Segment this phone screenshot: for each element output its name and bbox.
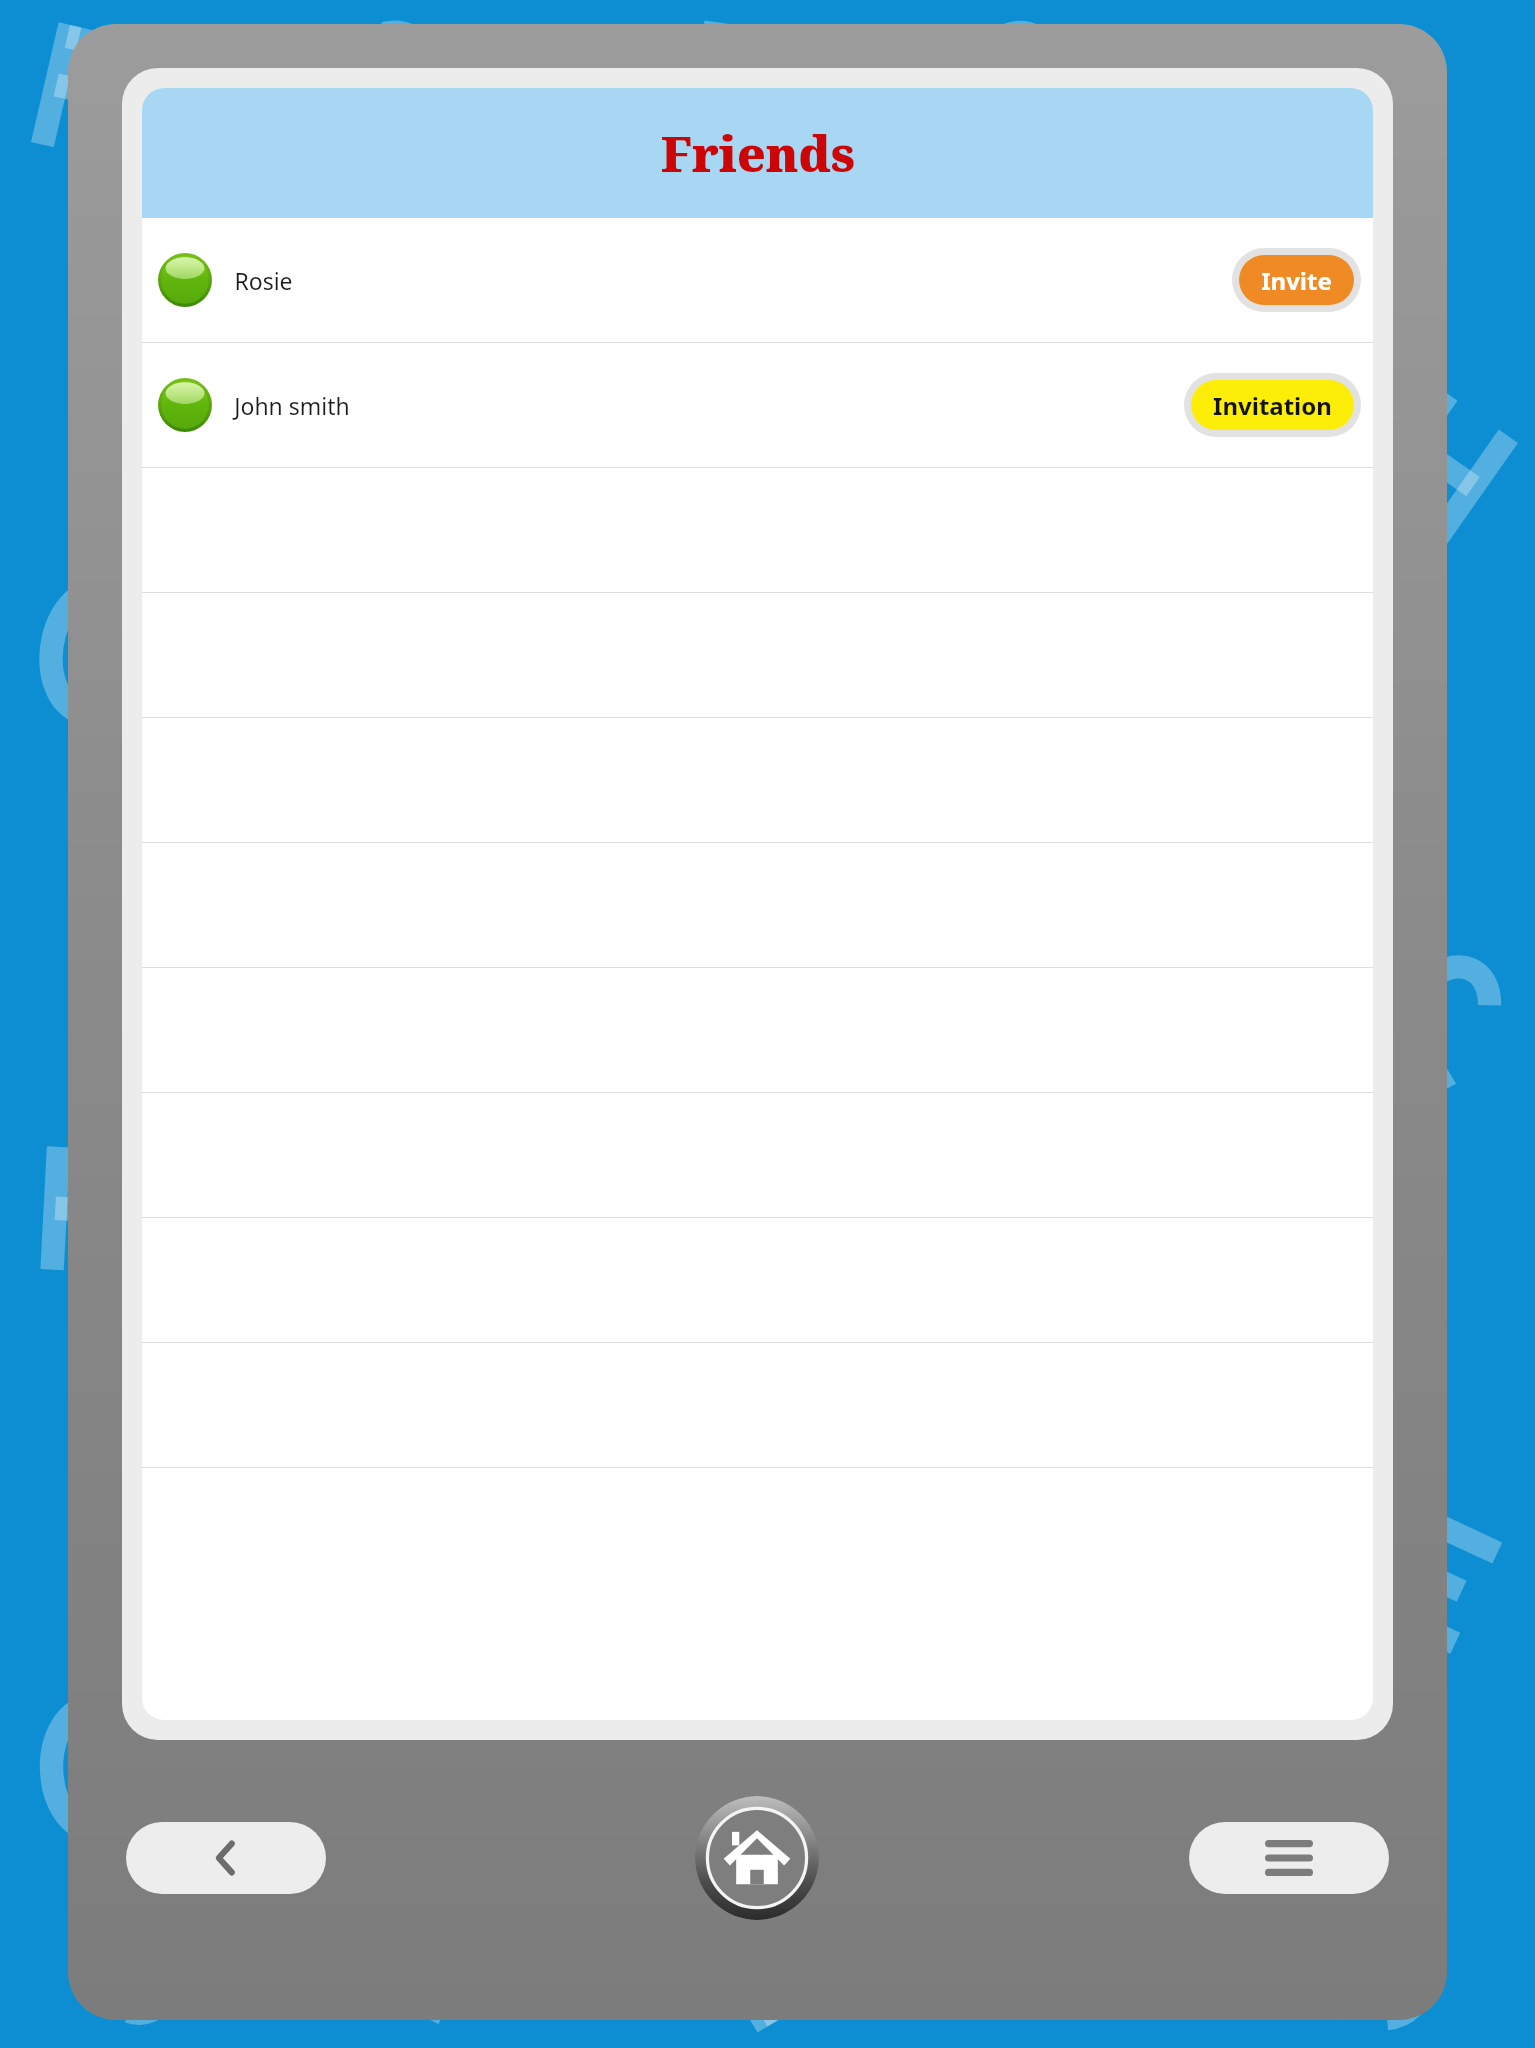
button[interactable]: Back [126, 1822, 326, 1894]
button[interactable]: Menu [1189, 1822, 1389, 1894]
button[interactable]: Invite [1239, 255, 1354, 305]
button[interactable]: Invitation [1191, 380, 1354, 430]
staticText: Invite [1261, 264, 1332, 297]
button[interactable]: Home [695, 1796, 819, 1920]
staticText: John smith [234, 390, 350, 421]
staticText: Friends [661, 121, 855, 186]
staticText: Rosie [234, 265, 293, 296]
button[interactable]: John smith [142, 343, 1373, 467]
staticText: Invitation [1213, 389, 1332, 422]
button[interactable]: Rosie [142, 218, 1373, 342]
